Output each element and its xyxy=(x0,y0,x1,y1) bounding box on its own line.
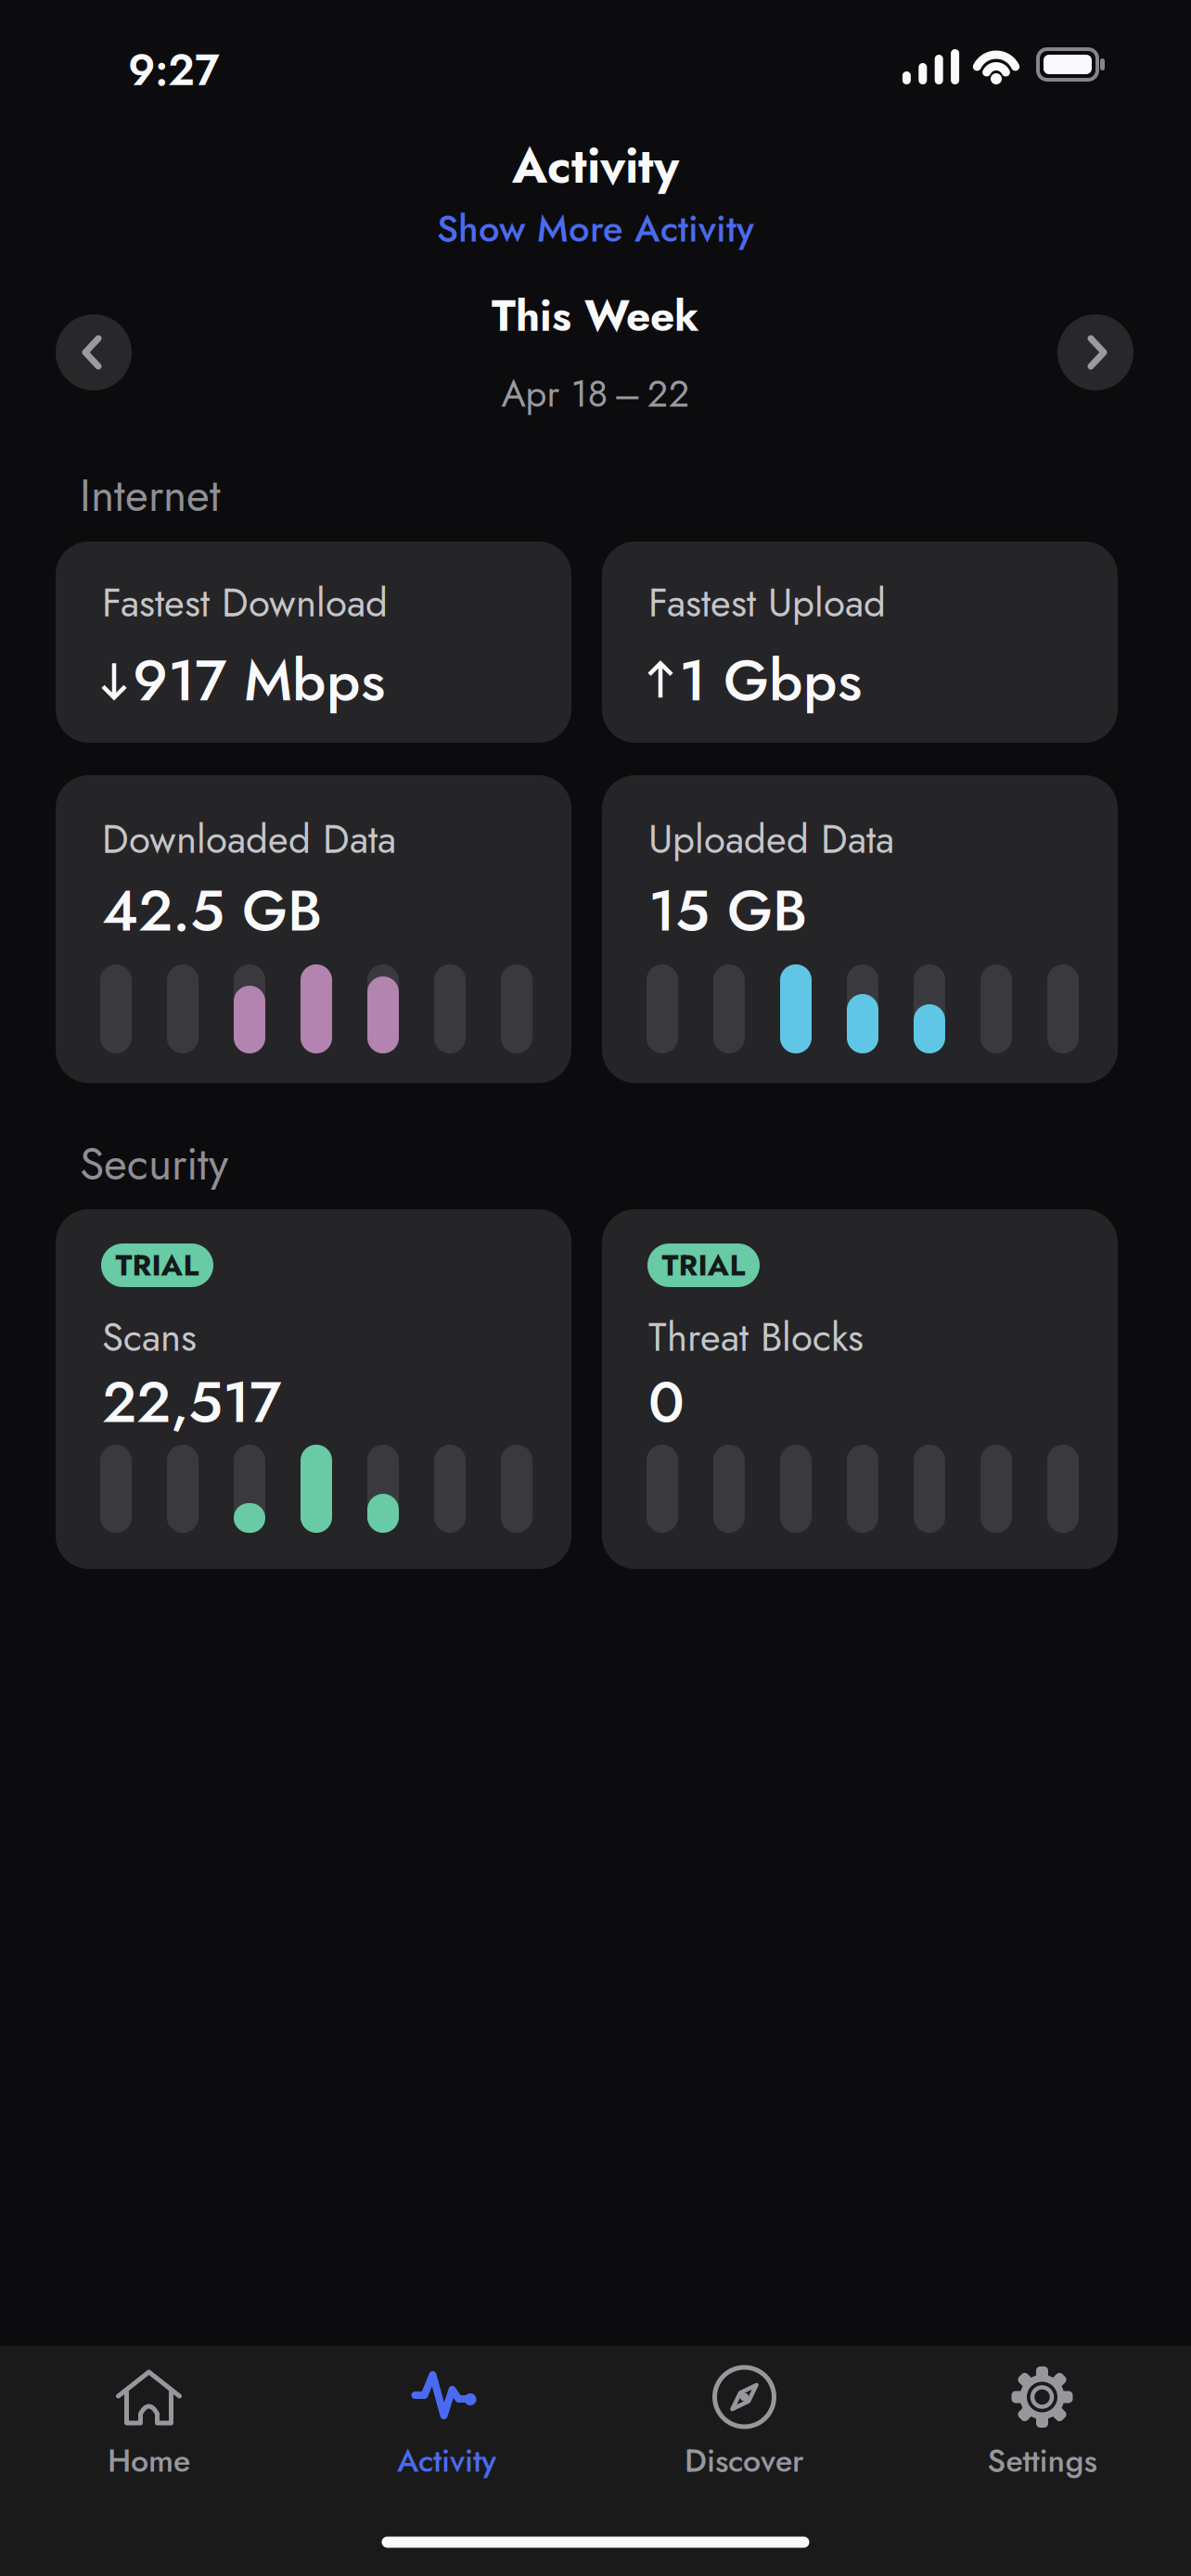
button[interactable]: Next week xyxy=(1057,314,1133,390)
staticText: TRIAL xyxy=(662,1244,745,1287)
staticText: Scans xyxy=(102,1309,197,1365)
button[interactable]: Show More Activity xyxy=(0,0,1191,54)
staticText: 917 Mbps xyxy=(133,639,385,722)
staticText: 42.5 GB xyxy=(102,869,322,952)
staticText: Downloaded Data xyxy=(102,811,396,867)
staticText: Show More Activity xyxy=(437,202,754,256)
staticText: Uploaded Data xyxy=(648,811,894,867)
button[interactable]: Home xyxy=(0,2367,298,2516)
staticText: – xyxy=(614,367,641,421)
staticText: Internet xyxy=(80,463,221,528)
button[interactable]: Settings xyxy=(893,2367,1191,2516)
staticText: Threat Blocks xyxy=(648,1309,864,1365)
button[interactable]: Previous week xyxy=(56,314,132,390)
button[interactable]: Uploaded Data xyxy=(602,775,1118,1083)
staticText: 22,517 xyxy=(102,1360,281,1444)
staticText: Apr 18 xyxy=(501,367,608,421)
staticText: 15 GB xyxy=(648,869,807,952)
staticText: TRIAL xyxy=(115,1244,199,1287)
button[interactable]: TRIAL xyxy=(602,1209,1118,1569)
button[interactable]: Discover xyxy=(595,2367,893,2516)
staticText: Activity xyxy=(397,2438,496,2483)
button[interactable]: Fastest Upload xyxy=(602,542,1118,743)
staticText: 1 Gbps xyxy=(679,639,862,722)
staticText: 0 xyxy=(648,1360,685,1444)
staticText: 22 xyxy=(647,367,690,421)
button[interactable]: Activity xyxy=(298,2367,595,2516)
staticText: Discover xyxy=(685,2438,804,2483)
staticText: Home xyxy=(108,2438,190,2483)
staticText: This Week xyxy=(492,285,699,347)
button[interactable]: Fastest Download xyxy=(56,542,571,743)
staticText: Fastest Upload xyxy=(648,575,886,631)
staticText: Fastest Download xyxy=(102,575,388,631)
staticText: Activity xyxy=(512,131,679,201)
staticText: Settings xyxy=(987,2438,1097,2483)
staticText: Security xyxy=(80,1132,228,1196)
button[interactable]: TRIAL xyxy=(56,1209,571,1569)
staticText: 9:27 xyxy=(128,40,220,101)
button[interactable]: Downloaded Data xyxy=(56,775,571,1083)
